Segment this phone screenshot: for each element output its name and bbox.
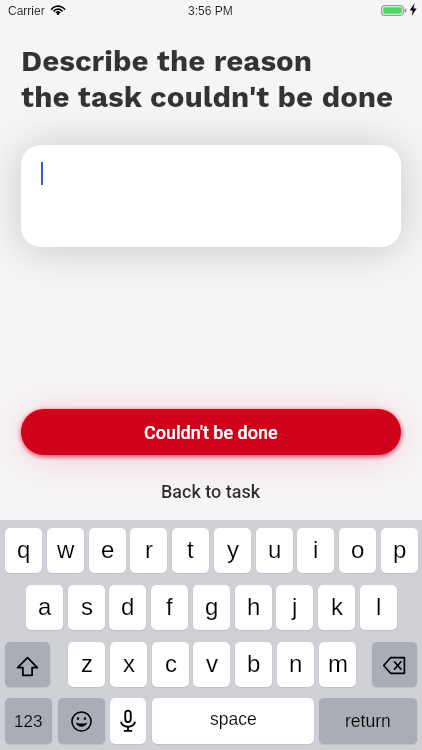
staticText: d xyxy=(121,593,135,620)
staticText: 123 xyxy=(14,712,43,731)
button[interactable]: Backspace xyxy=(372,642,417,687)
button[interactable]: v xyxy=(193,642,230,687)
button[interactable]: h xyxy=(235,585,272,630)
button[interactable]: 123 xyxy=(5,698,52,744)
button[interactable]: Back to task xyxy=(141,477,281,505)
button[interactable]: m xyxy=(319,642,356,687)
button[interactable]: e xyxy=(89,528,126,573)
staticText: Back to task xyxy=(161,481,261,502)
staticText: c xyxy=(165,650,177,677)
button[interactable]: s xyxy=(68,585,105,630)
button[interactable]: k xyxy=(318,585,355,630)
button[interactable]: y xyxy=(214,528,251,573)
staticText: k xyxy=(331,593,343,620)
staticText: o xyxy=(351,536,365,563)
staticText: return xyxy=(345,711,391,731)
button[interactable]: i xyxy=(297,528,334,573)
staticText: q xyxy=(17,536,31,563)
button[interactable]: t xyxy=(172,528,209,573)
button[interactable]: c xyxy=(152,642,189,687)
staticText: e xyxy=(101,536,115,563)
staticText: u xyxy=(268,536,282,563)
button[interactable]: f xyxy=(151,585,188,630)
staticText: m xyxy=(328,650,348,677)
staticText: f xyxy=(166,593,173,620)
button[interactable]: Couldn't be done xyxy=(21,409,401,455)
staticText: v xyxy=(206,650,218,677)
button[interactable]: w xyxy=(47,528,84,573)
staticText: t xyxy=(187,536,194,563)
staticText: Describe the reason xyxy=(21,44,312,79)
staticText: space xyxy=(210,709,257,729)
button[interactable]: Emoji xyxy=(58,698,105,744)
button[interactable]: o xyxy=(339,528,376,573)
staticText: a xyxy=(38,593,52,620)
button[interactable]: Dictation xyxy=(110,698,146,744)
staticText: the task couldn't be done xyxy=(21,80,394,115)
button[interactable]: z xyxy=(68,642,105,687)
staticText: s xyxy=(81,593,93,620)
button[interactable]: r xyxy=(130,528,167,573)
staticText: r xyxy=(145,536,153,563)
button[interactable]: space xyxy=(152,698,314,744)
staticText: p xyxy=(393,536,407,563)
button[interactable]: u xyxy=(256,528,293,573)
button[interactable]: n xyxy=(277,642,314,687)
button[interactable]: j xyxy=(276,585,313,630)
staticText: n xyxy=(289,650,303,677)
staticText: Couldn't be done xyxy=(144,422,278,443)
staticText: w xyxy=(57,536,75,563)
staticText: i xyxy=(313,536,319,563)
button[interactable]: b xyxy=(235,642,272,687)
staticText: l xyxy=(376,593,382,620)
staticText: y xyxy=(227,536,239,563)
button[interactable]: return xyxy=(319,698,417,744)
button[interactable]: a xyxy=(26,585,63,630)
button[interactable] xyxy=(21,145,401,247)
staticText: 3:56 PM xyxy=(188,4,233,17)
staticText: x xyxy=(123,650,135,677)
button[interactable]: l xyxy=(360,585,397,630)
button[interactable]: d xyxy=(109,585,146,630)
button[interactable]: x xyxy=(110,642,147,687)
staticText: Carrier xyxy=(8,4,45,17)
button[interactable]: Shift xyxy=(5,642,50,687)
button[interactable]: p xyxy=(381,528,418,573)
staticText: h xyxy=(247,593,261,620)
button[interactable]: q xyxy=(5,528,42,573)
staticText: z xyxy=(81,650,93,677)
staticText: b xyxy=(247,650,261,677)
staticText: g xyxy=(205,593,219,620)
staticText: j xyxy=(292,593,298,620)
button[interactable]: g xyxy=(193,585,230,630)
